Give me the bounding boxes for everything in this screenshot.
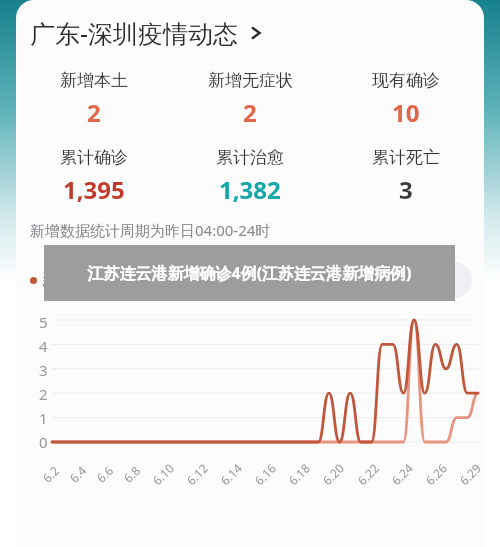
staticText: 新增无症状 (130, 270, 210, 290)
staticText: 6.4 (66, 462, 89, 486)
button[interactable]: 按月 (411, 265, 469, 295)
button[interactable]: 新增无症状 (172, 70, 328, 129)
other: Open details (247, 24, 265, 42)
staticText: 按月 (424, 270, 456, 290)
staticText: 3 (39, 360, 48, 380)
staticText: 0 (39, 432, 48, 452)
staticText: 江苏连云港新增确诊4例(江苏连云港新增病例) (87, 262, 412, 284)
staticText: 6.24 (388, 460, 416, 488)
staticText: 6.18 (285, 460, 313, 488)
staticText: 6.10 (149, 460, 177, 488)
staticText: 2 (243, 96, 257, 129)
staticText: 按日 (364, 270, 396, 290)
staticText: 6.20 (319, 460, 347, 488)
staticText: 3 (399, 173, 413, 206)
staticText: 累计确诊 (60, 147, 128, 168)
staticText: 现有确诊 (372, 70, 440, 91)
button[interactable]: 广东-深圳疫情动态 (16, 0, 484, 52)
staticText: 2 (87, 96, 101, 129)
staticText: 6.8 (120, 462, 143, 486)
button[interactable]: 现有确诊 (328, 70, 484, 129)
staticText: 10 (392, 96, 420, 129)
staticText: 6.12 (183, 460, 211, 488)
staticText: 累计死亡 (372, 147, 440, 168)
staticText: 新增无症状 (208, 70, 293, 91)
staticText: 累计治愈 (216, 147, 284, 168)
staticText: 5 (39, 312, 48, 332)
staticText: 1,395 (63, 173, 125, 206)
button[interactable]: 累计确诊 (16, 147, 172, 206)
staticText: 4 (39, 336, 48, 356)
staticText: 1 (39, 408, 48, 428)
button[interactable]: 新增本土 (16, 70, 172, 129)
staticText: 6.29 (456, 460, 484, 488)
button[interactable]: 累计治愈 (172, 147, 328, 206)
staticText: 2 (39, 384, 48, 404)
staticText: 新增数据统计周期为昨日04:00-24时 (30, 220, 271, 240)
staticText: 1,382 (219, 173, 281, 206)
staticText: 6.14 (217, 460, 245, 488)
staticText: 6.22 (354, 460, 382, 488)
staticText: 新增本土 (42, 270, 106, 290)
staticText: 6.16 (251, 460, 279, 488)
staticText: 6.2 (39, 462, 62, 486)
button[interactable]: 累计死亡 (328, 147, 484, 206)
staticText: 广东-深圳疫情动态 (30, 16, 239, 50)
staticText: 6.6 (93, 462, 116, 486)
staticText: 6.26 (422, 460, 450, 488)
staticText: 新增本土 (60, 70, 128, 91)
button[interactable]: 按日 (349, 265, 411, 295)
